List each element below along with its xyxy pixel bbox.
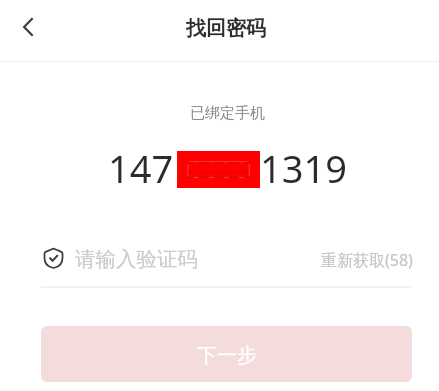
staticText: 请输入验证码 xyxy=(75,246,198,272)
button[interactable]: 重新获取(58) xyxy=(313,238,417,286)
staticText: 已绑定手机 xyxy=(190,104,265,123)
staticText: 147 xyxy=(108,142,174,194)
staticText: 下一步 xyxy=(197,343,257,368)
button[interactable]: 下一步 xyxy=(41,326,412,382)
staticText: 重新获取(58) xyxy=(321,249,413,271)
button[interactable]: Back xyxy=(6,5,50,49)
staticText: 找回密码 xyxy=(186,16,266,41)
staticText: 1319 xyxy=(260,142,347,194)
button[interactable]: Verification code input xyxy=(41,238,313,286)
